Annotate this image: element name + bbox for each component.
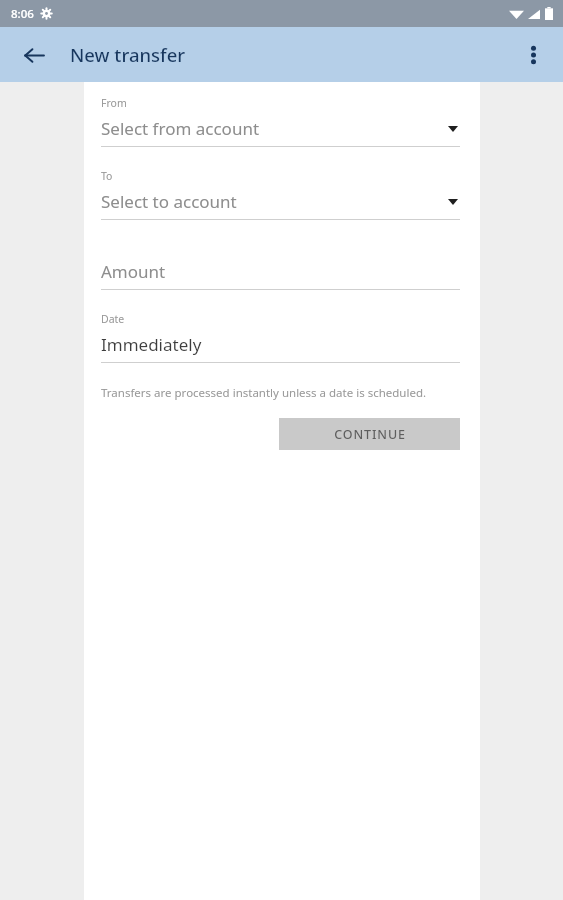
- staticText: Amount: [101, 260, 166, 283]
- button[interactable]: Immediately: [101, 333, 460, 363]
- staticText: Transfers are processed instantly unless…: [101, 385, 427, 401]
- button[interactable]: Amount: [101, 260, 460, 290]
- staticText: Date: [101, 312, 125, 326]
- staticText: 8:06: [11, 6, 34, 22]
- staticText: From: [101, 96, 127, 110]
- button[interactable]: Select from account: [101, 117, 460, 147]
- staticText: Select to account: [101, 190, 237, 213]
- staticText: CONTINUE: [334, 426, 406, 443]
- staticText: To: [101, 169, 113, 183]
- button[interactable]: CONTINUE: [279, 418, 460, 450]
- button[interactable]: Back: [12, 33, 56, 77]
- staticText: New transfer: [70, 42, 186, 67]
- button[interactable]: More options: [511, 33, 555, 77]
- button[interactable]: Select to account: [101, 190, 460, 220]
- staticText: Immediately: [101, 333, 202, 356]
- staticText: Select from account: [101, 117, 260, 140]
